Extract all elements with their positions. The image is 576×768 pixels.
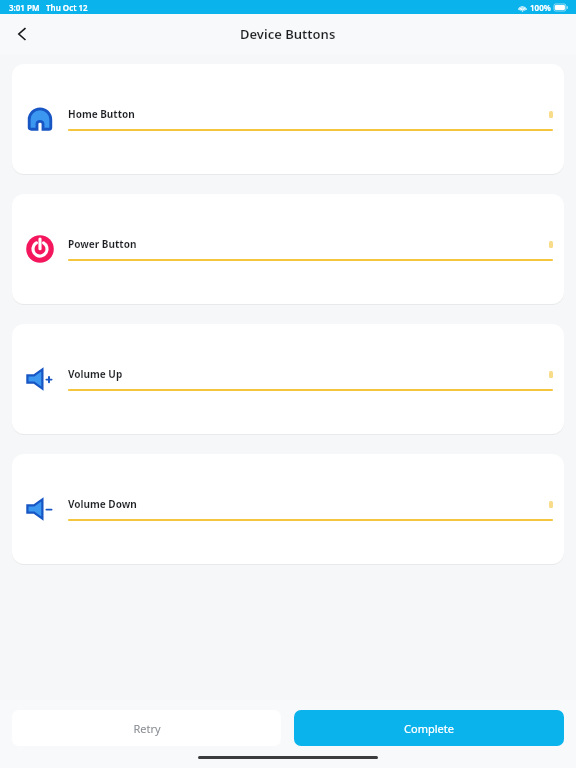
button[interactable]: Volume up [12, 324, 564, 434]
button[interactable]: Volume down [12, 454, 564, 564]
other: Volume up [25, 364, 55, 394]
button[interactable]: Power [12, 194, 564, 304]
button[interactable]: Home [12, 64, 564, 174]
staticText: Complete [404, 721, 454, 736]
staticText: Home Button [68, 107, 135, 121]
staticText: Device Buttons [240, 25, 336, 43]
staticText: Power Button [68, 237, 137, 251]
staticText: 100% [530, 2, 551, 13]
staticText: 3:01 PM [9, 2, 40, 13]
staticText: Retry [133, 721, 161, 736]
other: Power [25, 234, 55, 264]
button[interactable]: Retry [12, 710, 281, 746]
button[interactable]: Back [4, 16, 40, 52]
staticText: Thu Oct 12 [46, 2, 88, 13]
staticText: Volume Up [68, 367, 123, 381]
other: Home [25, 104, 55, 134]
other: Volume down [25, 494, 55, 524]
button[interactable]: Complete [294, 710, 564, 746]
staticText: Volume Down [68, 497, 137, 511]
